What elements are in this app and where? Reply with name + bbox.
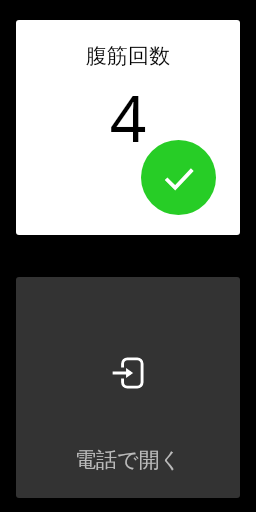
staticText: 腹筋回数 <box>16 43 240 69</box>
button[interactable]: 腹筋回数 <box>16 20 240 235</box>
button[interactable]: Open on phone <box>16 277 240 498</box>
staticText: 電話で開く <box>16 447 240 473</box>
staticText: 4 <box>16 74 240 161</box>
button[interactable]: Add repetition <box>141 140 216 215</box>
